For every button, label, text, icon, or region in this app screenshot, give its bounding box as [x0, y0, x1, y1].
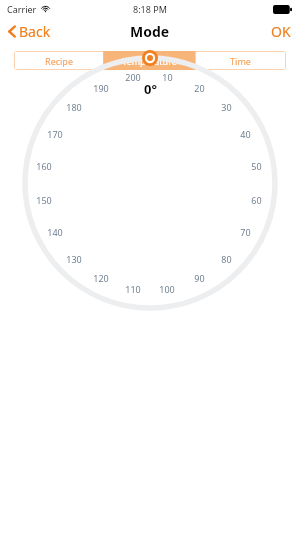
staticText: Temperature [122, 55, 177, 67]
staticText: 110 [125, 283, 141, 295]
staticText: 70 [240, 226, 251, 238]
staticText: 190 [93, 82, 109, 94]
staticText: 160 [36, 160, 52, 172]
staticText: Carrier [7, 3, 37, 15]
staticText: 8:18 PM [133, 3, 167, 15]
staticText: 200 [125, 71, 141, 83]
staticText: 130 [66, 253, 82, 265]
staticText: 120 [93, 272, 109, 284]
button[interactable]: Temperature dial [0, 79, 300, 359]
staticText: 100 [159, 283, 175, 295]
staticText: 40 [240, 128, 251, 140]
staticText: 90 [194, 272, 205, 284]
button[interactable]: Recipe [14, 51, 104, 70]
staticText: 170 [47, 128, 63, 140]
staticText: 30 [221, 101, 232, 113]
staticText: 140 [47, 226, 63, 238]
staticText: OK [271, 22, 291, 40]
staticText: 10 [162, 71, 173, 83]
staticText: Back [19, 22, 51, 40]
button[interactable]: Back [0, 18, 61, 44]
staticText: 0° [144, 80, 157, 98]
button[interactable]: Temperature [104, 51, 195, 70]
button[interactable]: OK [261, 18, 300, 44]
staticText: Mode [130, 22, 170, 41]
button[interactable]: Time [195, 51, 286, 70]
staticText: 80 [221, 253, 232, 265]
staticText: 50 [251, 160, 262, 172]
staticText: 60 [251, 194, 262, 206]
staticText: 20 [194, 82, 205, 94]
staticText: 150 [36, 194, 52, 206]
staticText: 180 [66, 101, 82, 113]
staticText: Recipe [45, 55, 73, 67]
staticText: Time [230, 55, 251, 67]
